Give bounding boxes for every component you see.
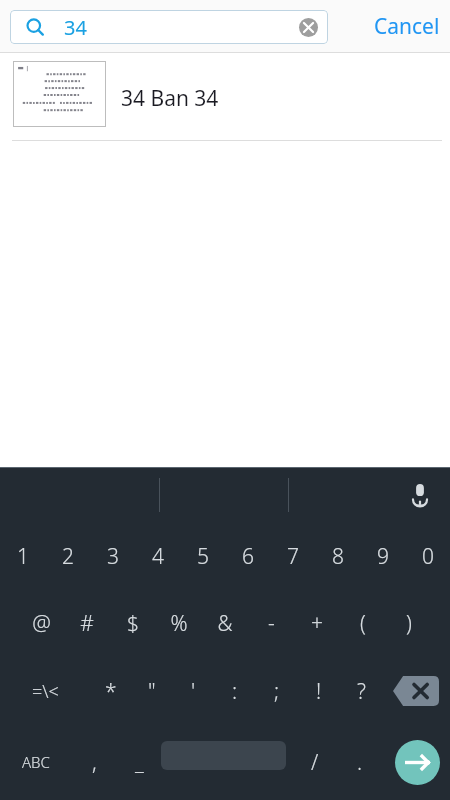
staticText: + (311, 609, 323, 638)
button[interactable]: 3 (90, 522, 135, 590)
button[interactable]: ( (340, 590, 386, 656)
button[interactable]: . (337, 726, 382, 798)
button[interactable]: =\< (0, 656, 90, 726)
button[interactable]: 8 (315, 522, 360, 590)
button[interactable]: ' (172, 656, 214, 726)
staticText: 3 (107, 542, 119, 571)
staticText: ; (274, 677, 280, 706)
staticText: ) (406, 609, 412, 638)
button[interactable]: $ (110, 590, 156, 656)
button[interactable]: Voice input (398, 473, 442, 517)
staticText: ? (357, 677, 366, 706)
button[interactable]: 6 (225, 522, 270, 590)
button[interactable]: & (202, 590, 248, 656)
button[interactable]: 1 (0, 522, 45, 590)
button[interactable]: Cancel (364, 0, 450, 53)
button[interactable]: 34 (10, 10, 328, 44)
staticText: 4 (152, 542, 164, 571)
button[interactable]: 2 (45, 522, 90, 590)
staticText: 0 (422, 542, 434, 571)
button[interactable]: ABC (0, 726, 72, 798)
button[interactable]: 0 (405, 522, 450, 590)
staticText: 6 (242, 542, 254, 571)
staticText: 7 (287, 542, 299, 571)
staticText: , (92, 748, 97, 777)
staticText: " (148, 677, 156, 706)
staticText: ABC (22, 752, 50, 772)
button[interactable]: ! (298, 656, 340, 726)
button[interactable]: 4 (135, 522, 180, 590)
staticText: * (105, 677, 117, 706)
staticText: 2 (62, 542, 74, 571)
button[interactable]: # (64, 590, 110, 656)
staticText: 5 (197, 542, 209, 571)
staticText: 1 (17, 542, 29, 571)
button[interactable]: ; (256, 656, 298, 726)
button[interactable]: Backspace (382, 656, 450, 726)
staticText: . (357, 748, 363, 777)
staticText: 34 (64, 14, 87, 41)
staticText: 8 (332, 542, 344, 571)
staticText: =\< (32, 679, 59, 704)
button[interactable]: Enter (388, 726, 446, 798)
staticText: / (311, 748, 319, 777)
button[interactable]: 34 Ban 34 (0, 53, 450, 141)
button[interactable]: @ (18, 590, 64, 656)
staticText: - (268, 609, 275, 638)
staticText: % (170, 609, 188, 638)
staticText: ( (360, 609, 366, 638)
staticText: : (232, 677, 238, 706)
button[interactable]: " (131, 656, 172, 726)
button[interactable]: _ (117, 726, 162, 798)
staticText: ! (316, 677, 322, 706)
staticText: _ (135, 748, 144, 777)
staticText: 9 (377, 542, 389, 571)
button[interactable]: 5 (180, 522, 225, 590)
staticText: 34 Ban 34 (121, 84, 219, 113)
button[interactable]: , (72, 726, 117, 798)
button[interactable]: - (248, 590, 294, 656)
button[interactable]: 7 (270, 522, 315, 590)
staticText: Cancel (374, 12, 440, 41)
staticText: @ (32, 609, 51, 638)
staticText: ' (191, 677, 196, 706)
button[interactable]: * (90, 656, 131, 726)
staticText: # (80, 609, 94, 638)
staticText: $ (127, 609, 139, 638)
button[interactable]: 9 (360, 522, 405, 590)
button[interactable]: : (214, 656, 256, 726)
button[interactable]: ? (340, 656, 382, 726)
button[interactable]: Clear search (294, 13, 322, 41)
staticText: & (217, 609, 233, 638)
button[interactable]: ) (386, 590, 432, 656)
button[interactable]: % (156, 590, 202, 656)
button[interactable]: + (294, 590, 340, 656)
button[interactable]: / (292, 726, 337, 798)
